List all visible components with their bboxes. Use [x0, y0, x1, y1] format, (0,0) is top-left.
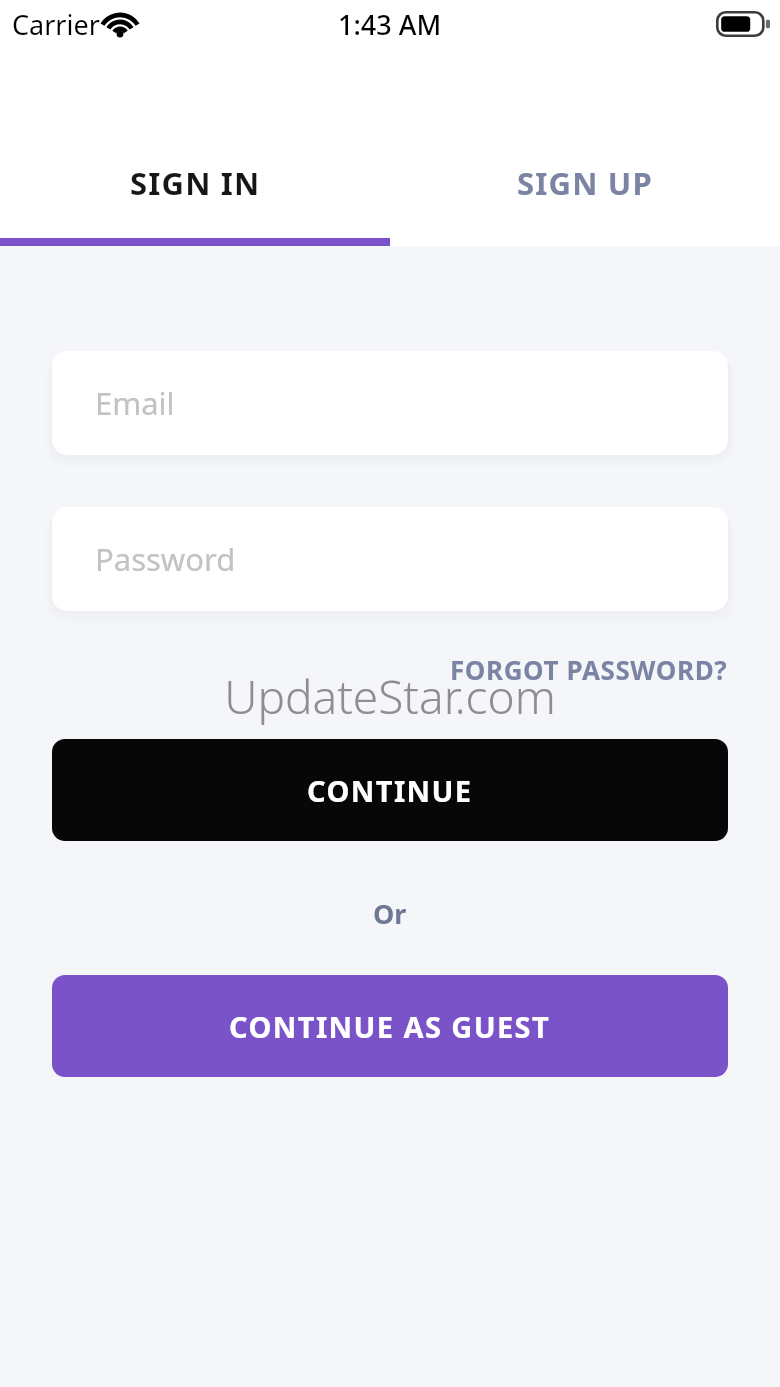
staticText: SIGN UP [517, 162, 653, 204]
button[interactable]: CONTINUE AS GUEST [52, 975, 728, 1077]
staticText: Email [95, 382, 175, 424]
staticText: Carrier [12, 6, 100, 43]
staticText: CONTINUE AS GUEST [229, 1007, 551, 1046]
button[interactable]: FORGOT PASSWORD? [450, 652, 728, 687]
button[interactable]: SIGN IN [0, 140, 390, 238]
staticText: UpdateStar.com [224, 665, 556, 728]
button[interactable]: CONTINUE [52, 739, 728, 841]
button[interactable]: Password [52, 507, 728, 611]
staticText: SIGN IN [130, 162, 261, 204]
staticText: Password [95, 538, 236, 580]
staticText: Or [373, 895, 407, 932]
button[interactable]: SIGN UP [390, 140, 780, 238]
staticText: CONTINUE [307, 771, 473, 810]
other: Wi-Fi [98, 8, 142, 38]
other: Battery [716, 11, 770, 37]
staticText: 1:43 AM [338, 6, 442, 43]
button[interactable]: Email [52, 351, 728, 455]
